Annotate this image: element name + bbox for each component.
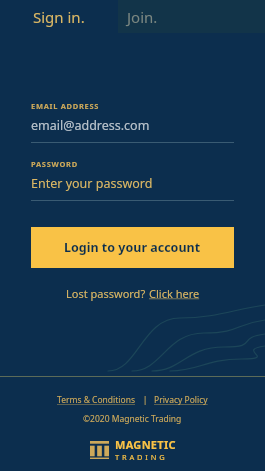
staticText: EMAIL ADDRESS (31, 101, 100, 111)
staticText: Lost password? (66, 286, 149, 301)
button[interactable]: Enter your password (31, 175, 234, 192)
staticText: MAGNETIC (115, 437, 176, 452)
button[interactable]: Magnetic Trading logo (90, 437, 176, 462)
button[interactable]: Terms & Conditions (57, 394, 136, 406)
button[interactable]: Lost password? (31, 286, 234, 301)
staticText: Privacy Policy (154, 394, 208, 406)
button[interactable]: email@address.com (31, 117, 234, 134)
staticText: PASSWORD (31, 159, 78, 169)
staticText: Join. (127, 7, 158, 27)
staticText: | (136, 394, 154, 406)
button[interactable]: Login to your account (31, 227, 234, 268)
button[interactable]: Sign in. (0, 0, 118, 33)
staticText: Terms & Conditions (57, 394, 136, 406)
staticText: Login to your account (64, 239, 201, 256)
staticText: Sign in. (33, 7, 85, 27)
staticText: Click here (149, 286, 200, 301)
staticText: TRADING (115, 452, 168, 462)
staticText: ©2020 Magnetic Trading (83, 413, 182, 425)
button[interactable]: Privacy Policy (154, 394, 208, 406)
button[interactable]: Join. (118, 0, 265, 33)
